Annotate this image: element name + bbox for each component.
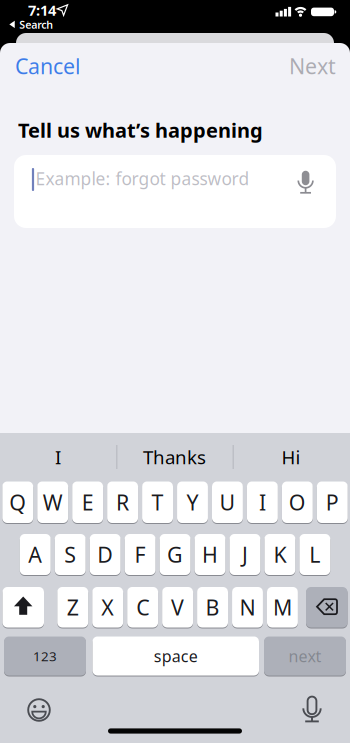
staticText: Cancel: [15, 52, 81, 80]
staticText: Z: [67, 593, 79, 621]
staticText: Thanks: [143, 445, 206, 469]
staticText: X: [101, 593, 114, 621]
staticText: H: [202, 540, 218, 569]
button[interactable]: B: [197, 586, 228, 628]
staticText: E: [82, 488, 94, 516]
button[interactable]: Thanks: [122, 436, 226, 478]
staticText: 7:14: [28, 0, 56, 20]
staticText: J: [242, 540, 248, 569]
staticText: K: [273, 540, 286, 569]
button[interactable]: T: [142, 481, 173, 523]
staticText: M: [273, 593, 292, 621]
button[interactable]: [298, 693, 326, 723]
staticText: R: [116, 488, 129, 516]
button[interactable]: D: [90, 533, 121, 575]
button[interactable]: L: [299, 533, 330, 575]
staticText: Next: [289, 52, 336, 80]
staticText: Hi: [281, 445, 300, 469]
staticText: P: [326, 488, 339, 516]
button[interactable]: E: [72, 481, 103, 523]
staticText: N: [239, 593, 255, 621]
button[interactable]: I: [8, 436, 108, 478]
button[interactable]: 123: [4, 636, 86, 676]
button[interactable]: M: [267, 586, 298, 628]
button[interactable]: N: [232, 586, 263, 628]
button[interactable]: X: [92, 586, 123, 628]
staticText: Q: [9, 488, 26, 516]
staticText: A: [28, 540, 42, 569]
staticText: U: [219, 488, 235, 516]
button[interactable]: [306, 586, 347, 628]
staticText: S: [64, 540, 76, 569]
staticText: L: [309, 540, 320, 569]
button[interactable]: S: [55, 533, 86, 575]
button[interactable]: G: [160, 533, 190, 575]
staticText: V: [171, 593, 184, 621]
button[interactable]: next: [264, 636, 346, 676]
staticText: T: [152, 488, 164, 516]
staticText: space: [154, 645, 198, 667]
staticText: W: [43, 488, 63, 516]
staticText: F: [135, 540, 146, 569]
button[interactable]: C: [127, 586, 158, 628]
button[interactable]: space: [92, 636, 259, 676]
staticText: C: [136, 593, 149, 621]
button[interactable]: Z: [57, 586, 88, 628]
button[interactable]: U: [212, 481, 243, 523]
button[interactable]: H: [195, 533, 225, 575]
button[interactable]: Cancel: [0, 44, 110, 88]
button[interactable]: A: [20, 533, 51, 575]
button[interactable]: [14, 155, 336, 228]
staticText: 123: [33, 647, 57, 665]
staticText: I: [259, 488, 266, 516]
button[interactable]: P: [317, 481, 348, 523]
staticText: D: [97, 540, 113, 569]
staticText: Tell us what’s happening: [18, 117, 263, 143]
staticText: Search: [19, 17, 53, 32]
button[interactable]: W: [37, 481, 68, 523]
button[interactable]: O: [282, 481, 313, 523]
button[interactable]: V: [162, 586, 193, 628]
staticText: Example: forgot password: [35, 167, 249, 190]
button[interactable]: F: [125, 533, 155, 575]
staticText: B: [206, 593, 220, 621]
button[interactable]: Search: [9, 17, 53, 32]
button[interactable]: Hi: [241, 436, 341, 478]
button[interactable]: R: [107, 481, 138, 523]
button[interactable]: Y: [177, 481, 208, 523]
staticText: G: [167, 540, 183, 569]
button[interactable]: Q: [2, 481, 33, 523]
button[interactable]: Next: [246, 44, 336, 88]
button[interactable]: [293, 167, 319, 197]
button[interactable]: K: [264, 533, 295, 575]
staticText: Y: [186, 488, 198, 516]
staticText: O: [289, 488, 306, 516]
button[interactable]: I: [247, 481, 278, 523]
button[interactable]: [2, 586, 44, 628]
staticText: I: [55, 445, 61, 469]
button[interactable]: [25, 696, 52, 723]
button[interactable]: J: [229, 533, 260, 575]
staticText: next: [288, 645, 321, 667]
